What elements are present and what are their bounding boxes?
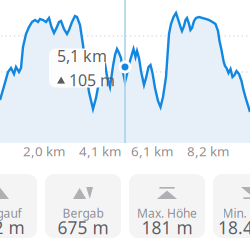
staticText: Max. Höhe	[137, 205, 197, 221]
staticText: 6,1 km	[131, 142, 173, 160]
staticText: 712 m	[0, 216, 24, 239]
staticText: 5,1 km	[57, 45, 107, 66]
staticText: 675 m	[57, 216, 108, 239]
staticText: 2,0 km	[23, 142, 65, 160]
button[interactable]: Bergab	[45, 174, 121, 238]
staticText: 105 m	[69, 69, 115, 91]
staticText: 4,1 km	[79, 142, 121, 160]
staticText: 181 m	[141, 216, 192, 239]
staticText: 8,2 km	[187, 142, 229, 160]
staticText: Bergauf	[0, 205, 21, 221]
staticText: 18.44 m	[218, 216, 250, 239]
button[interactable]: Max. Höhe	[129, 174, 205, 238]
staticText: Bergab	[62, 205, 103, 221]
button[interactable]: Bergauf	[0, 174, 37, 238]
staticText: Min. Höhe	[222, 205, 250, 221]
button[interactable]: Min. Höhe	[213, 174, 250, 238]
